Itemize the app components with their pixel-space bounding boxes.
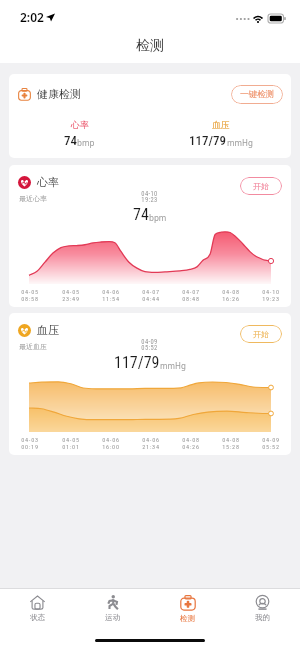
- staticText: 健康检测: [37, 87, 81, 101]
- staticText: 检测: [136, 37, 164, 55]
- staticText: 状态: [30, 613, 45, 622]
- staticText: 04-09 05:52: [141, 338, 158, 352]
- staticText: 04-10 19:23: [262, 288, 280, 302]
- staticText: 开始: [253, 181, 269, 191]
- staticText: 04-06 11:54: [102, 288, 120, 302]
- staticText: 04-07 08:48: [182, 288, 200, 302]
- staticText: mmHg: [227, 137, 253, 148]
- staticText: 04-06 16:00: [102, 436, 120, 450]
- button[interactable]: 状态: [0, 589, 75, 627]
- staticText: 开始: [253, 329, 269, 339]
- staticText: 检测: [180, 614, 195, 623]
- staticText: 04-10 19:23: [141, 190, 158, 204]
- staticText: 04-03 00:19: [21, 436, 39, 450]
- button[interactable]: 运动: [75, 589, 150, 627]
- staticText: 04-05 08:58: [21, 288, 39, 302]
- staticText: 117/79: [189, 133, 227, 148]
- staticText: 我的: [255, 613, 270, 622]
- staticText: 04-05 23:49: [62, 288, 80, 302]
- button[interactable]: 开始: [240, 177, 282, 195]
- staticText: 心率: [37, 175, 59, 189]
- other: 运动: [105, 595, 120, 610]
- staticText: 血压: [37, 323, 59, 337]
- staticText: 04-08 16:26: [222, 288, 240, 302]
- staticText: 04-07 04:44: [142, 288, 160, 302]
- staticText: 最近心率: [19, 194, 47, 203]
- staticText: 74: [64, 133, 77, 148]
- staticText: 2:02: [20, 9, 44, 25]
- staticText: mmHg: [160, 360, 186, 371]
- staticText: 04-09 05:52: [262, 436, 280, 450]
- staticText: 74: [133, 205, 149, 224]
- staticText: bpm: [149, 212, 167, 223]
- staticText: 最近血压: [19, 342, 47, 351]
- staticText: bmp: [77, 137, 95, 148]
- staticText: 04-06 21:34: [142, 436, 160, 450]
- button[interactable]: 我的: [225, 589, 300, 627]
- staticText: 一键检测: [240, 89, 274, 100]
- other: 我的: [255, 595, 270, 610]
- button[interactable]: 一键检测: [231, 85, 283, 104]
- staticText: 04-08 04:26: [182, 436, 200, 450]
- staticText: 04-08 15:28: [222, 436, 240, 450]
- staticText: 运动: [105, 613, 120, 622]
- button[interactable]: 检测: [150, 589, 225, 627]
- staticText: 117/79: [114, 353, 160, 372]
- button[interactable]: 开始: [240, 325, 282, 343]
- staticText: 血压: [212, 119, 230, 130]
- staticText: 心率: [71, 119, 89, 130]
- staticText: 04-05 01:01: [62, 436, 80, 450]
- other: 状态: [30, 595, 45, 610]
